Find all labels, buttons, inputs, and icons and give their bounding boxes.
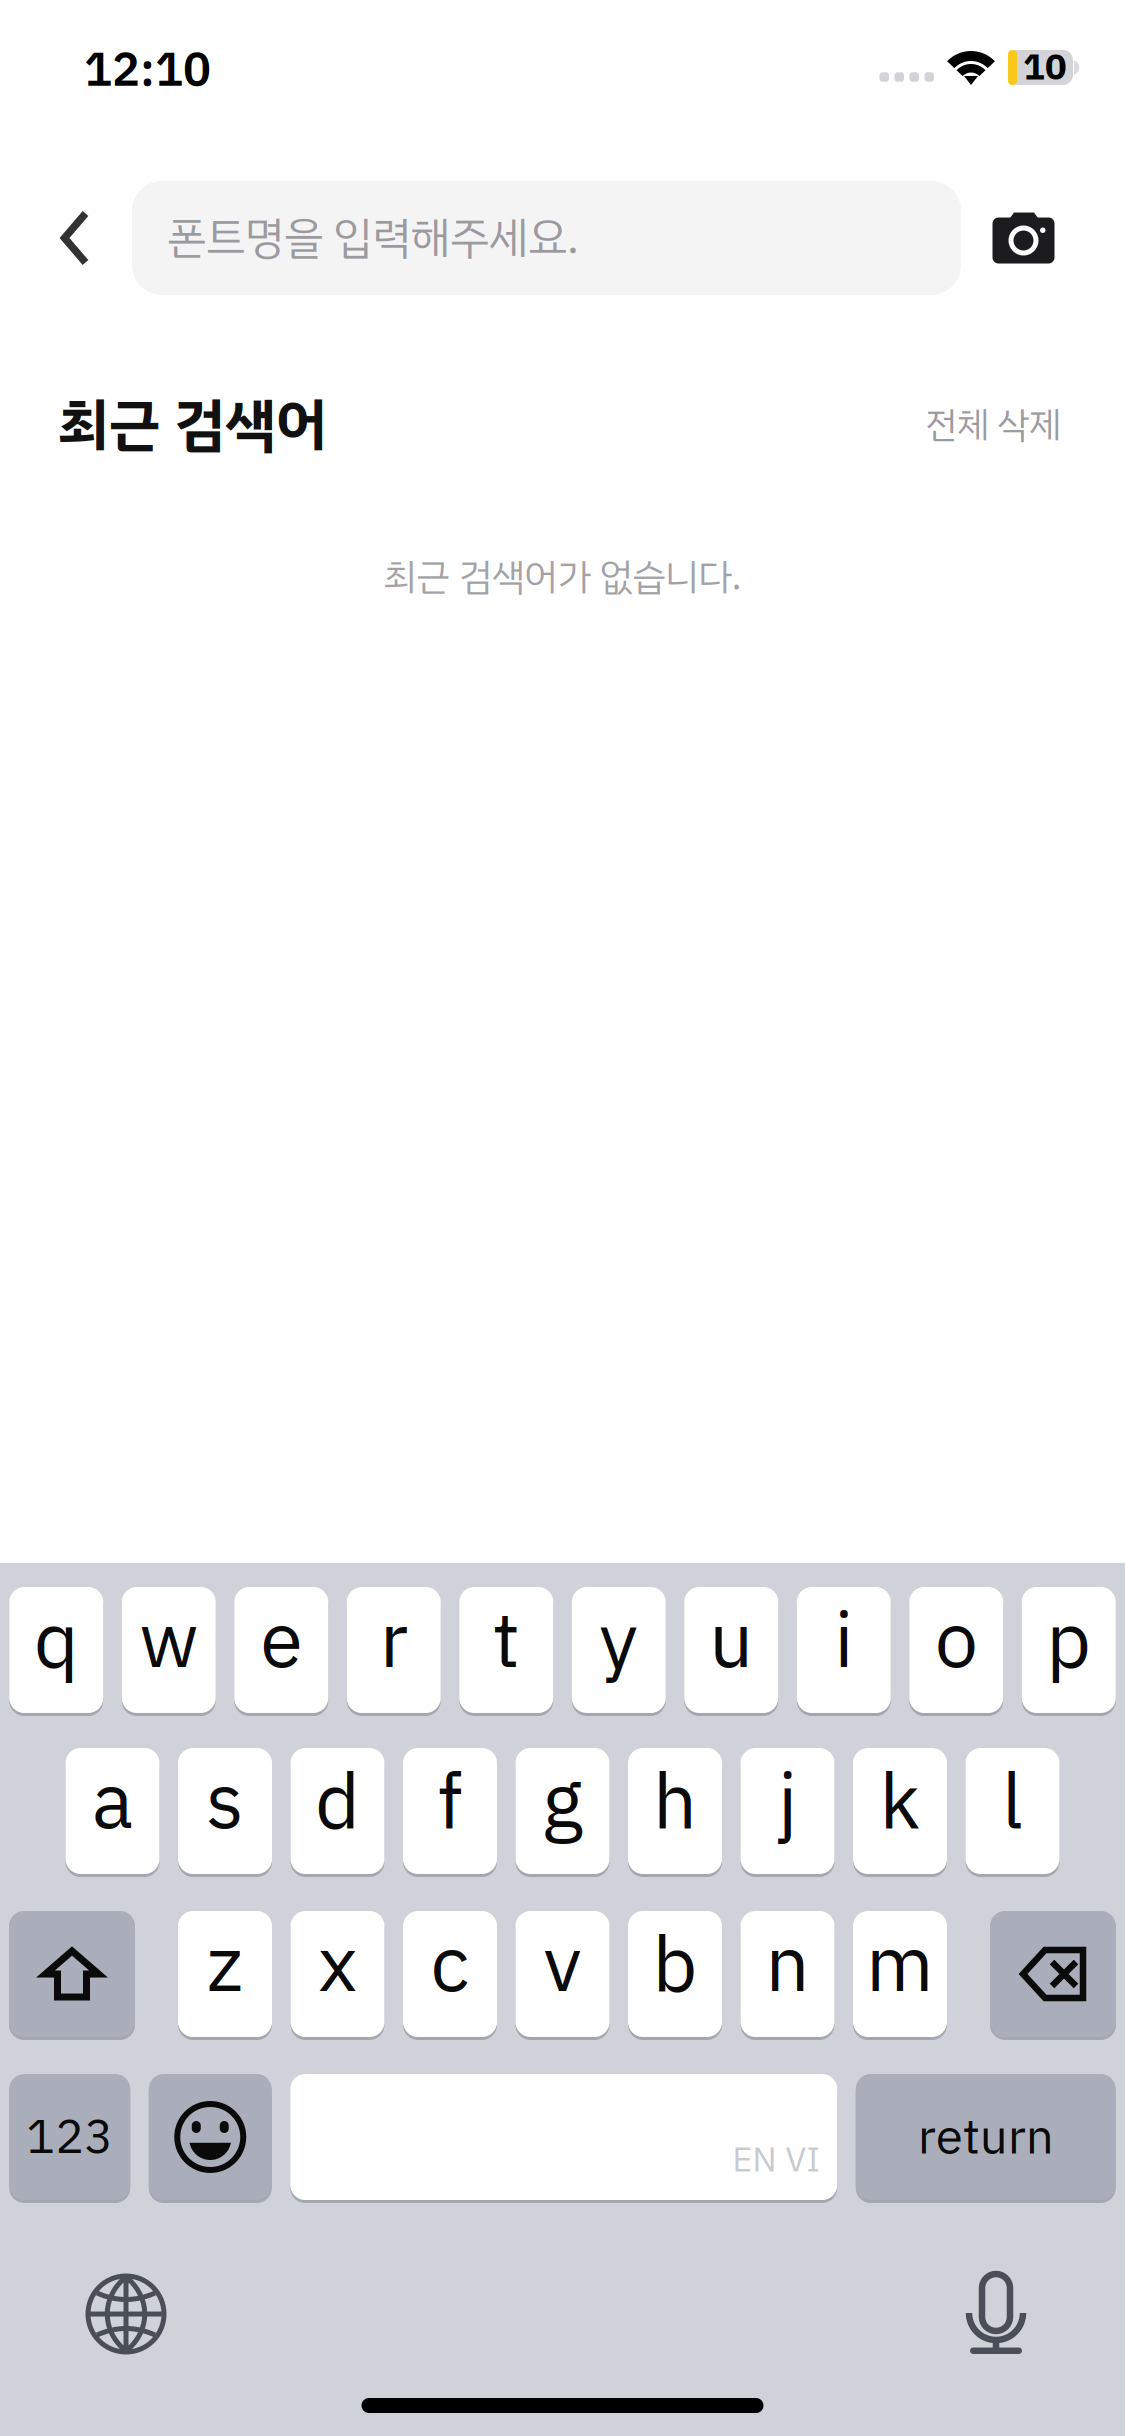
staticText: t <box>493 1583 520 1699</box>
button[interactable]: return <box>856 2074 1116 2203</box>
staticText: z <box>207 1907 243 2023</box>
staticText: p <box>1046 1583 1091 1699</box>
staticText: s <box>206 1744 244 1860</box>
staticText: b <box>652 1907 697 2023</box>
button[interactable]: u <box>684 1587 778 1716</box>
button[interactable]: q <box>9 1587 103 1716</box>
staticText: 최근 검색어 <box>58 382 327 468</box>
staticText: EN VI <box>732 2134 820 2186</box>
button[interactable]: Delete <box>990 1911 1116 2040</box>
button[interactable]: i <box>797 1587 891 1716</box>
button[interactable]: k <box>853 1748 947 1877</box>
button[interactable]: 폰트명을 입력해주세요. <box>132 181 961 295</box>
button[interactable]: b <box>628 1911 722 2040</box>
staticText: u <box>709 1583 753 1699</box>
staticText: y <box>599 1583 638 1699</box>
staticText: o <box>935 1583 978 1699</box>
button[interactable]: Switch keyboard <box>60 2259 192 2369</box>
staticText: 폰트명을 입력해주세요. <box>167 205 579 271</box>
staticText: 123 <box>26 2101 113 2173</box>
staticText: a <box>92 1744 133 1860</box>
button[interactable]: 123 <box>9 2074 130 2203</box>
button[interactable]: x <box>290 1911 384 2040</box>
button[interactable]: v <box>515 1911 609 2040</box>
button[interactable]: Back <box>0 181 132 295</box>
staticText: q <box>34 1583 79 1699</box>
button[interactable]: n <box>740 1911 834 2040</box>
staticText: 최근 검색어가 없습니다. <box>383 549 741 605</box>
button[interactable]: 전체 삭제 <box>925 398 1061 452</box>
button[interactable]: t <box>459 1587 553 1716</box>
button[interactable]: s <box>178 1748 272 1877</box>
staticText: f <box>437 1744 462 1860</box>
button[interactable]: p <box>1022 1587 1116 1716</box>
staticText: l <box>1002 1744 1023 1860</box>
staticText: x <box>318 1907 357 2023</box>
button[interactable]: y <box>572 1587 666 1716</box>
staticText: g <box>542 1744 583 1860</box>
button[interactable]: z <box>178 1911 272 2040</box>
button[interactable]: Shift <box>9 1911 135 2040</box>
staticText: d <box>315 1744 360 1860</box>
button[interactable]: Space <box>290 2074 837 2203</box>
button[interactable]: f <box>403 1748 497 1877</box>
button[interactable]: e <box>234 1587 328 1716</box>
button[interactable]: d <box>290 1748 384 1877</box>
staticText: 10 <box>1023 40 1067 94</box>
button[interactable]: m <box>853 1911 947 2040</box>
button[interactable]: c <box>403 1911 497 2040</box>
staticText: h <box>653 1744 697 1860</box>
staticText: n <box>765 1907 809 2023</box>
staticText: e <box>260 1583 302 1699</box>
staticText: c <box>430 1907 469 2023</box>
button[interactable]: a <box>65 1748 159 1877</box>
button[interactable]: Emoji <box>149 2074 272 2203</box>
button[interactable]: r <box>347 1587 441 1716</box>
staticText: r <box>380 1583 408 1699</box>
staticText: j <box>778 1744 797 1860</box>
button[interactable]: o <box>909 1587 1003 1716</box>
button[interactable]: h <box>628 1748 722 1877</box>
staticText: k <box>879 1744 920 1860</box>
button[interactable]: Dictate <box>930 2259 1062 2369</box>
staticText: 전체 삭제 <box>925 398 1061 452</box>
staticText: return <box>918 2100 1054 2174</box>
button[interactable]: Camera search <box>961 181 1125 295</box>
staticText: w <box>139 1583 198 1699</box>
staticText: 12:10 <box>84 35 211 105</box>
button[interactable]: g <box>515 1748 609 1877</box>
button[interactable]: l <box>965 1748 1059 1877</box>
button[interactable]: w <box>122 1587 216 1716</box>
button[interactable]: j <box>740 1748 834 1877</box>
staticText: m <box>866 1907 934 2023</box>
staticText: i <box>834 1583 853 1699</box>
staticText: v <box>543 1907 581 2023</box>
